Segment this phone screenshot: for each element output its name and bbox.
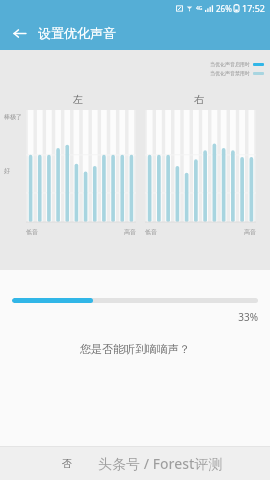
staticText: 26% (216, 3, 232, 14)
button[interactable]: 否 (52, 452, 82, 475)
staticText: 好 (4, 167, 10, 175)
staticText: 低音 (26, 228, 38, 236)
staticText: 高音 (244, 228, 256, 236)
staticText: 33% (12, 310, 258, 324)
staticText: 4G (196, 5, 203, 12)
staticText: 棒极了 (4, 113, 22, 121)
staticText: 当优化声音禁用时 (210, 70, 250, 76)
staticText: 左 (73, 93, 83, 106)
staticText: 17:52 (242, 2, 266, 14)
staticText: 当优化声音启用时 (210, 61, 250, 67)
staticText: 高音 (124, 228, 136, 236)
staticText: 右 (194, 93, 204, 106)
staticText: 头条号 / Forest评测 (98, 454, 223, 473)
staticText: 低音 (145, 228, 157, 236)
staticText: 否 (62, 457, 72, 470)
staticText: 设置优化声音 (38, 25, 116, 41)
button[interactable]: Back (6, 20, 32, 46)
staticText: 您是否能听到嘀嘀声？ (0, 342, 270, 356)
